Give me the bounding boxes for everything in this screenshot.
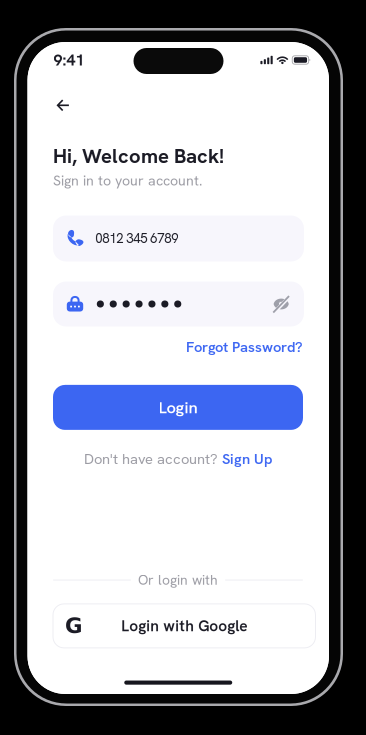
button[interactable]: Forgot Password? [186, 339, 303, 355]
staticText: Login [158, 397, 197, 418]
staticText: Hi, Welcome Back! [53, 143, 224, 169]
staticText: Or login with [138, 571, 218, 589]
button[interactable]: Show password [271, 294, 291, 314]
staticText: 9:41 [53, 50, 84, 70]
staticText: Forgot Password? [186, 337, 303, 356]
button[interactable]: Login [53, 385, 303, 430]
button[interactable]: Back [56, 88, 90, 122]
staticText: Don't have account? [84, 449, 218, 468]
staticText: Sign Up [222, 449, 272, 468]
staticText: 0812 345 6789 [95, 230, 178, 247]
button[interactable]: Sign Up [222, 449, 272, 468]
staticText: Login with Google [121, 616, 247, 636]
staticText: Sign in to your account. [53, 171, 202, 190]
button[interactable]: G [53, 604, 315, 648]
staticText: G [65, 613, 83, 638]
